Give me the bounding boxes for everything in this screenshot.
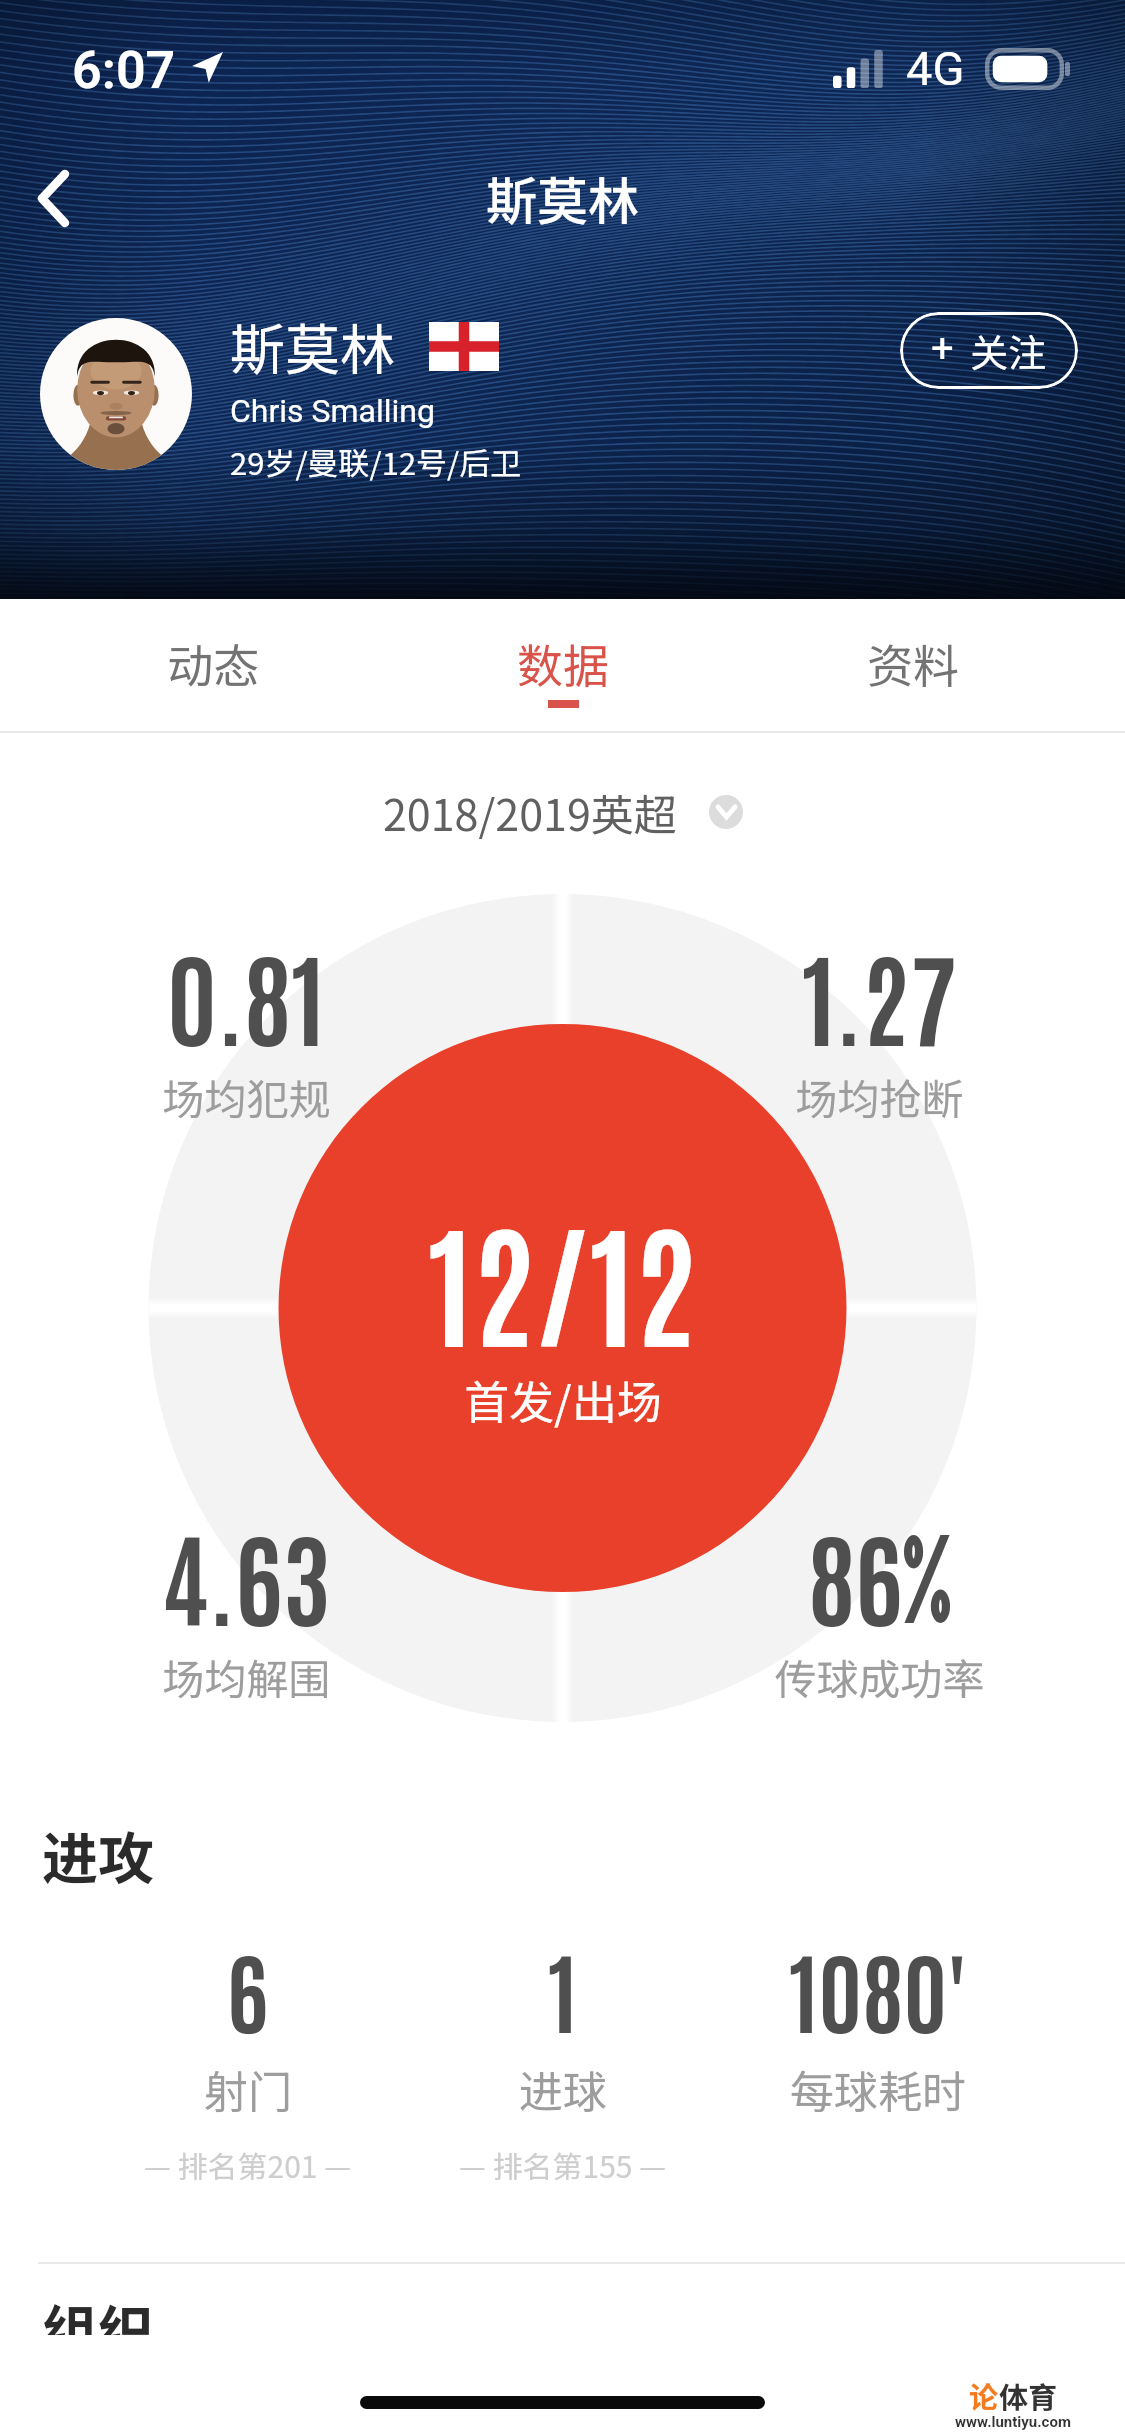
staticText: 射门 xyxy=(204,2057,292,2121)
staticText: 斯莫林 xyxy=(486,161,640,235)
staticText: 每球耗时 xyxy=(790,2057,966,2121)
staticText: 首发/出场 xyxy=(464,1367,662,1432)
staticText: 斯莫林 xyxy=(230,306,396,386)
staticText: 0.81 xyxy=(167,928,325,1060)
button[interactable]: + xyxy=(900,312,1078,389)
staticText: 4G xyxy=(906,41,965,96)
staticText: — 排名第155 — xyxy=(459,2143,667,2186)
staticText: 进球 xyxy=(519,2057,607,2121)
staticText: Chris Smalling xyxy=(230,392,435,430)
staticText: 数据 xyxy=(517,630,609,697)
staticText: 6:07 xyxy=(72,40,176,101)
staticText: 1080' xyxy=(789,1930,966,2045)
staticText: 12/12 xyxy=(428,1191,697,1366)
staticText: 场均犯规 xyxy=(162,1066,331,1127)
staticText: 传球成功率 xyxy=(774,1646,985,1707)
staticText: 4.63 xyxy=(161,1508,331,1640)
staticText: 1.27 xyxy=(802,928,957,1060)
button[interactable]: 数据 xyxy=(388,599,738,731)
staticText: 论 xyxy=(969,2374,999,2416)
staticText: www.luntiyu.com xyxy=(955,2413,1071,2431)
staticText: — 排名第201 — xyxy=(144,2143,352,2186)
staticText: 体育 xyxy=(999,2374,1058,2416)
staticText: 组织 xyxy=(42,2287,154,2335)
staticText: 进攻 xyxy=(42,1814,154,1895)
staticText: 资料 xyxy=(867,630,959,697)
button[interactable]: Back xyxy=(3,148,103,248)
button[interactable]: 2018/2019英超 xyxy=(383,781,743,843)
staticText: 29岁/曼联/12号/后卫 xyxy=(230,439,522,484)
staticText: 场均抢断 xyxy=(795,1066,964,1127)
staticText: + xyxy=(931,325,954,372)
button[interactable]: 动态 xyxy=(37,599,388,731)
staticText: 6 xyxy=(227,1930,269,2045)
staticText: 2018/2019英超 xyxy=(383,781,677,843)
staticText: 1 xyxy=(548,1930,578,2045)
button[interactable]: 资料 xyxy=(738,599,1088,731)
staticText: 86 xyxy=(808,1508,903,1640)
staticText: 动态 xyxy=(167,630,259,697)
staticText: 关注 xyxy=(970,323,1047,378)
staticText: 场均解围 xyxy=(162,1646,331,1707)
